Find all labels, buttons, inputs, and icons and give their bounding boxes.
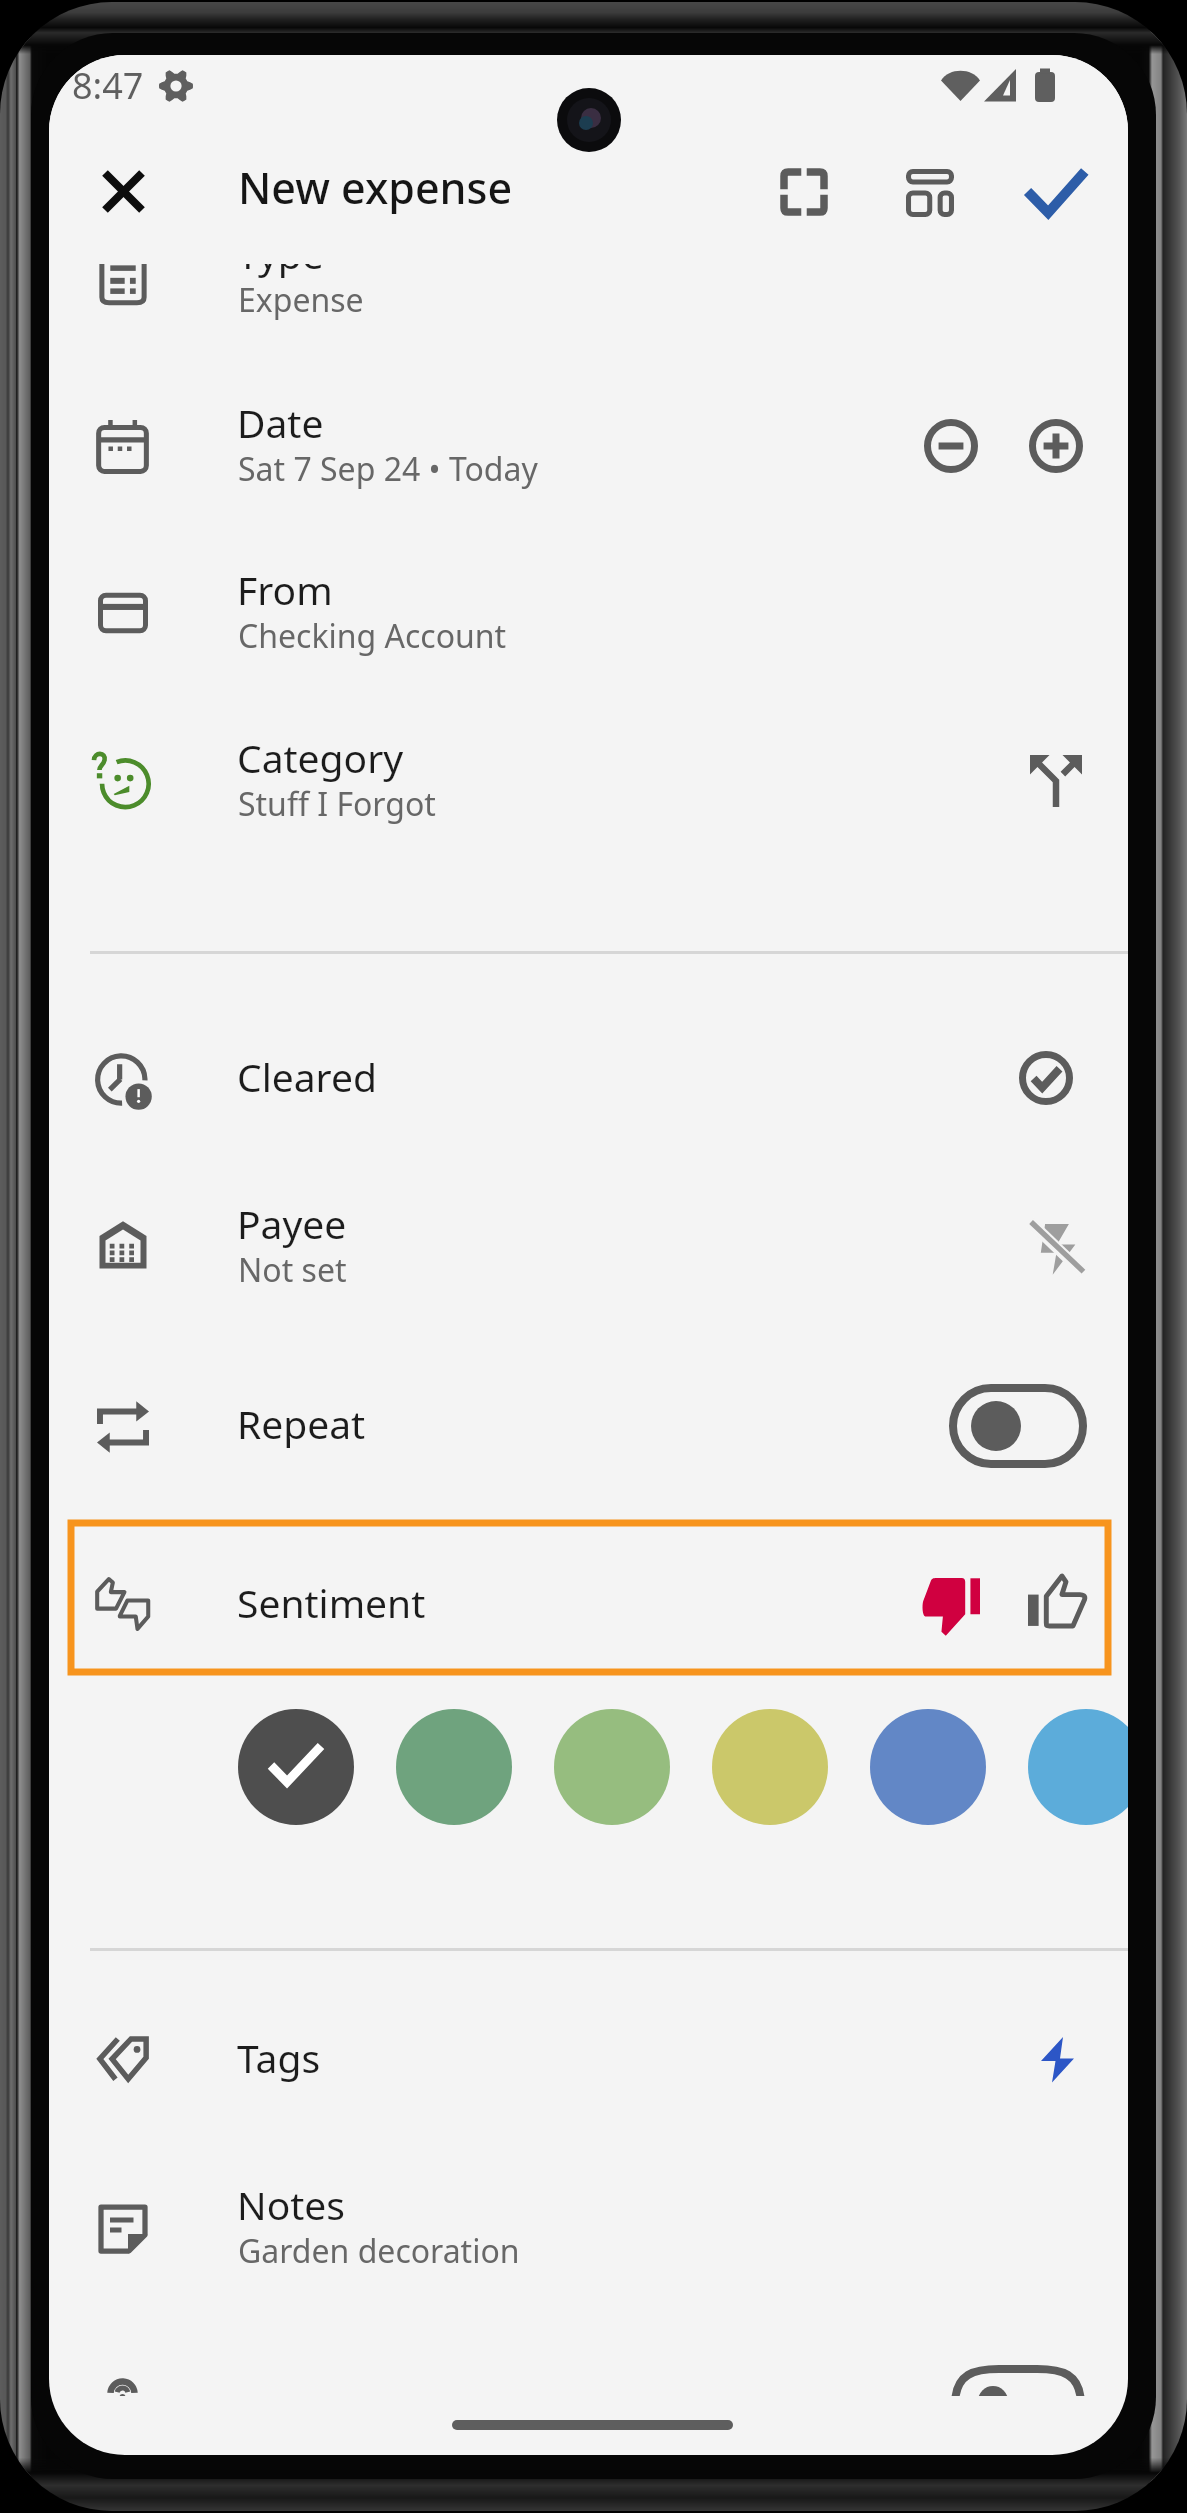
staticText: Type bbox=[237, 227, 324, 280]
staticText: Expense bbox=[238, 278, 364, 322]
button[interactable]: Fullscreen bbox=[780, 168, 828, 216]
button[interactable]: Sentiment bbox=[68, 1520, 1111, 1675]
button[interactable]: Quick tags bbox=[1032, 2034, 1082, 2084]
staticText: Cleared bbox=[237, 1050, 377, 1103]
button[interactable]: Flash off bbox=[1030, 1223, 1084, 1277]
button[interactable]: Cleared bbox=[1019, 1051, 1073, 1105]
button[interactable]: Repeat toggle bbox=[949, 1384, 1087, 1468]
button[interactable]: Increase date bbox=[1029, 419, 1083, 473]
button[interactable]: Colour 6 bbox=[1028, 1709, 1128, 1825]
staticText: New expense bbox=[238, 158, 513, 217]
button[interactable]: Colour 4 bbox=[712, 1709, 828, 1825]
staticText: Notes bbox=[237, 2178, 345, 2231]
button[interactable]: Save bbox=[1030, 168, 1082, 220]
staticText: 8:47 bbox=[72, 61, 144, 110]
staticText: Tags bbox=[237, 2031, 321, 2084]
button[interactable] bbox=[49, 527, 1128, 677]
button[interactable] bbox=[49, 360, 1128, 510]
button[interactable]: Colour 2 bbox=[396, 1709, 512, 1825]
staticText: From bbox=[237, 563, 333, 616]
staticText: Sentiment bbox=[237, 1576, 426, 1629]
button[interactable]: Colour 1 bbox=[238, 1709, 354, 1825]
button[interactable]: Dislike bbox=[922, 1578, 980, 1636]
button[interactable]: Layout bbox=[906, 169, 954, 217]
staticText: Checking Account bbox=[238, 614, 507, 658]
staticText: Payee bbox=[237, 1197, 347, 1250]
button[interactable]: Decrease date bbox=[924, 419, 978, 473]
button[interactable] bbox=[49, 695, 1128, 845]
button[interactable] bbox=[49, 191, 1128, 341]
staticText: Sat 7 Sep 24 • Today bbox=[238, 447, 538, 491]
staticText: Date bbox=[237, 396, 324, 449]
staticText: Stuff I Forgot bbox=[238, 782, 436, 826]
button[interactable] bbox=[49, 1161, 1128, 1311]
staticText: Category bbox=[237, 731, 404, 784]
button[interactable] bbox=[49, 1013, 1128, 1163]
button[interactable] bbox=[49, 1540, 1128, 1690]
button[interactable]: Colour 5 bbox=[870, 1709, 986, 1825]
button[interactable] bbox=[49, 2142, 1128, 2292]
button[interactable] bbox=[49, 1995, 1128, 2145]
staticText: Garden decoration bbox=[238, 2229, 520, 2273]
button[interactable]: Colour 3 bbox=[554, 1709, 670, 1825]
button[interactable]: Like bbox=[1028, 1574, 1086, 1632]
button[interactable]: Close bbox=[95, 163, 152, 220]
staticText: Repeat bbox=[237, 1397, 366, 1450]
button[interactable]: Split category bbox=[1030, 755, 1082, 807]
button[interactable] bbox=[49, 1361, 1128, 1511]
staticText: Not set bbox=[238, 1248, 347, 1292]
